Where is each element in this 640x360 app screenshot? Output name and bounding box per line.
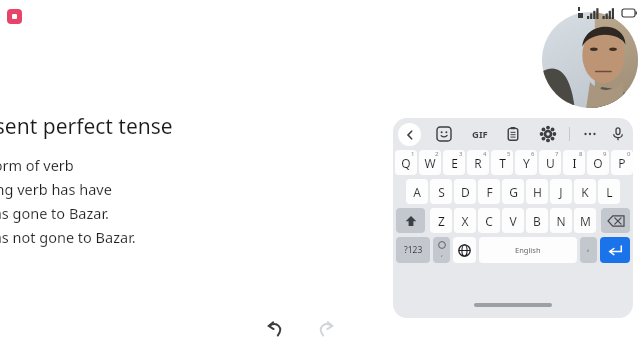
button[interactable]: Back bbox=[398, 123, 421, 146]
staticText: E bbox=[451, 155, 458, 171]
staticText: 9 bbox=[603, 150, 607, 158]
button[interactable]: Redo bbox=[308, 312, 342, 346]
button[interactable]: Clipboard bbox=[502, 123, 524, 145]
button[interactable]: W bbox=[419, 150, 441, 175]
staticText: D bbox=[461, 184, 470, 200]
staticText: J bbox=[559, 184, 563, 200]
staticText: 5 bbox=[507, 150, 511, 158]
staticText: K bbox=[581, 184, 589, 200]
staticText: 3 bbox=[459, 150, 463, 158]
button[interactable]: S bbox=[430, 179, 452, 204]
staticText: He has gone to Bazar. bbox=[0, 203, 109, 223]
staticText: S bbox=[438, 184, 445, 200]
staticText: 7 bbox=[555, 150, 559, 158]
staticText: 0 bbox=[627, 150, 631, 158]
button[interactable]: D bbox=[454, 179, 476, 204]
button[interactable]: U bbox=[539, 150, 561, 175]
staticText: ?123 bbox=[404, 244, 423, 256]
staticText: M bbox=[580, 213, 591, 229]
button[interactable]: L bbox=[598, 179, 620, 204]
button[interactable]: C bbox=[478, 208, 500, 233]
button[interactable]: E bbox=[443, 150, 465, 175]
button[interactable]: Z bbox=[430, 208, 452, 233]
staticText: G bbox=[509, 184, 518, 200]
button[interactable]: O bbox=[587, 150, 609, 175]
button[interactable]: N bbox=[550, 208, 572, 233]
button[interactable]: I bbox=[563, 150, 585, 175]
staticText: T bbox=[499, 155, 506, 171]
button[interactable]: Enter bbox=[600, 237, 630, 263]
staticText: U bbox=[546, 155, 555, 171]
staticText: L bbox=[606, 184, 613, 200]
button[interactable]: Video preview bbox=[542, 12, 638, 108]
button[interactable]: Emoji and comma bbox=[433, 237, 450, 263]
staticText: F bbox=[486, 184, 493, 200]
button[interactable]: Stop recording bbox=[7, 9, 22, 24]
button[interactable]: English bbox=[479, 237, 577, 263]
button[interactable]: A bbox=[406, 179, 428, 204]
staticText: A bbox=[413, 184, 421, 200]
button[interactable]: P bbox=[611, 150, 633, 175]
staticText: 2 bbox=[435, 150, 439, 158]
button[interactable]: B bbox=[526, 208, 548, 233]
button[interactable]: Undo bbox=[258, 312, 292, 346]
staticText: 8 bbox=[579, 150, 583, 158]
button[interactable]: M bbox=[574, 208, 596, 233]
staticText: Z bbox=[438, 213, 445, 229]
staticText: C bbox=[485, 213, 493, 229]
staticText: N bbox=[556, 213, 566, 229]
button[interactable]: GIF bbox=[468, 123, 492, 145]
staticText: O bbox=[593, 155, 603, 171]
staticText: GIF bbox=[472, 128, 488, 141]
button[interactable]: F bbox=[478, 179, 500, 204]
button[interactable]: Change language bbox=[453, 237, 476, 263]
staticText: He has not gone to Bazar. bbox=[0, 227, 136, 247]
button[interactable]: X bbox=[454, 208, 476, 233]
staticText: Present perfect tense bbox=[0, 112, 173, 141]
button[interactable]: Voice input bbox=[609, 123, 627, 145]
button[interactable]: T bbox=[491, 150, 513, 175]
staticText: Y bbox=[523, 155, 530, 171]
staticText: helping verb has have bbox=[0, 179, 112, 199]
button[interactable]: More options bbox=[579, 123, 601, 145]
staticText: W bbox=[424, 155, 436, 171]
button[interactable]: Emoji bbox=[433, 123, 455, 145]
button[interactable]: Settings bbox=[537, 123, 559, 145]
staticText: R bbox=[474, 155, 482, 171]
staticText: H bbox=[533, 184, 542, 200]
staticText: English bbox=[515, 245, 541, 255]
staticText: I bbox=[572, 155, 577, 171]
staticText: P bbox=[618, 155, 626, 171]
button[interactable]: Q bbox=[395, 150, 417, 175]
staticText: , bbox=[441, 249, 443, 259]
staticText: X bbox=[461, 213, 469, 229]
button[interactable]: Backspace bbox=[601, 208, 630, 233]
staticText: B bbox=[533, 213, 541, 229]
staticText: , bbox=[587, 241, 590, 253]
button[interactable]: Y bbox=[515, 150, 537, 175]
button[interactable]: H bbox=[526, 179, 548, 204]
button[interactable]: ?123 bbox=[396, 237, 430, 263]
button[interactable]: K bbox=[574, 179, 596, 204]
button[interactable]: J bbox=[550, 179, 572, 204]
staticText: 6 bbox=[531, 150, 535, 158]
button[interactable]: Shift bbox=[396, 208, 425, 233]
button[interactable]: G bbox=[502, 179, 524, 204]
staticText: 3rd form of verb bbox=[0, 155, 74, 175]
button[interactable]: R bbox=[467, 150, 489, 175]
staticText: Q bbox=[401, 155, 411, 171]
staticText: 4 bbox=[483, 150, 487, 158]
button[interactable]: V bbox=[502, 208, 524, 233]
staticText: 1 bbox=[411, 150, 415, 158]
button[interactable]: , bbox=[580, 237, 597, 263]
staticText: V bbox=[509, 213, 517, 229]
